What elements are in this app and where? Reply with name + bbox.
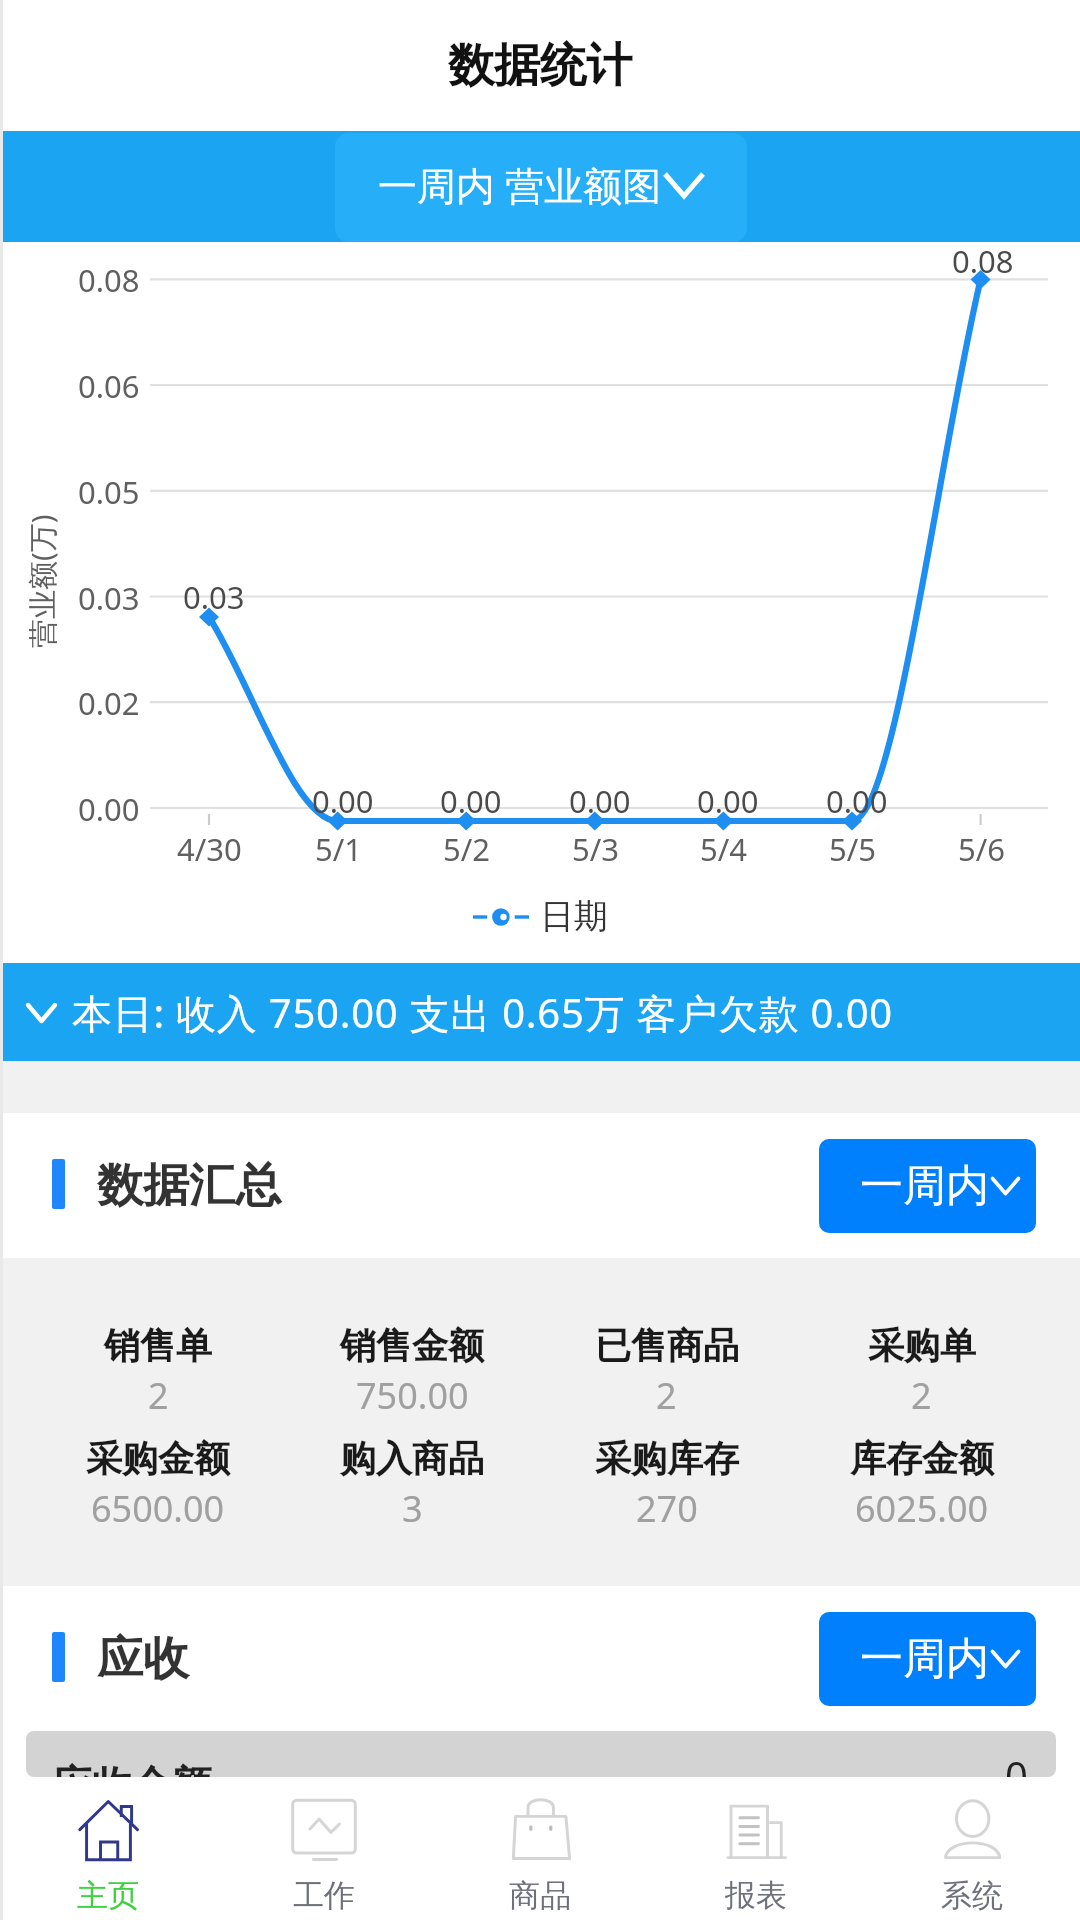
staticText: 5/4 [700,828,747,870]
button[interactable]: 一周内 [819,1139,1036,1233]
staticText: 0.08 [78,259,140,301]
staticText: 6025.00 [855,1484,989,1533]
staticText: 750.00 [356,1371,469,1420]
staticText: 日期 [540,895,608,938]
staticText: 一周内 营业额图 [378,158,662,211]
staticText: 0.00 [440,780,502,822]
staticText: 0.05 [78,471,140,513]
staticText: 270 [636,1484,698,1533]
staticText: 5/1 [315,828,362,870]
button[interactable]: 一周内 营业额图 [335,133,747,242]
button[interactable]: Reports [648,1777,864,1920]
button[interactable]: Work [216,1777,432,1920]
staticText: 3 [402,1484,423,1533]
staticText: 5/6 [958,828,1005,870]
staticText: 库存金额 [850,1436,994,1481]
button[interactable]: 一周内 [819,1612,1036,1706]
staticText: 5/3 [572,828,619,870]
button[interactable]: 本日: 收入 750.00 支出 0.65万 客户欠款 0.00 [0,963,1080,1061]
staticText: 采购金额 [86,1436,230,1481]
staticText: 0 [1005,1748,1028,1777]
staticText: 本日: 收入 750.00 支出 0.65万 客户欠款 0.00 [72,985,893,1040]
staticText: 一周内 [860,1632,989,1686]
staticText: 采购单 [868,1323,976,1368]
button[interactable]: 应收金额 [26,1731,1056,1777]
staticText: 购入商品 [340,1436,484,1481]
staticText: 0.02 [78,682,140,724]
staticText: 数据统计 [448,37,632,95]
staticText: 应收金额 [52,1760,212,1777]
staticText: 0.00 [312,780,374,822]
staticText: 0.00 [826,780,888,822]
button[interactable]: System [864,1777,1080,1920]
staticText: 2 [911,1371,932,1420]
staticText: 0.00 [78,788,140,830]
staticText: 销售金额 [340,1323,484,1368]
staticText: 0.06 [78,365,140,407]
staticText: 0.08 [952,240,1014,282]
staticText: 5/5 [829,828,876,870]
staticText: 5/2 [443,828,490,870]
staticText: 应收 [97,1630,189,1688]
staticText: 报表 [725,1876,787,1915]
staticText: 采购库存 [595,1436,739,1481]
button[interactable]: Goods [432,1777,648,1920]
staticText: 0.03 [183,576,245,618]
staticText: 工作 [293,1876,355,1915]
staticText: 0.00 [569,780,631,822]
staticText: 0.03 [78,577,140,619]
staticText: 2 [148,1371,169,1420]
staticText: 4/30 [177,828,242,870]
button[interactable]: Home [0,1777,216,1920]
staticText: 2 [656,1371,677,1420]
staticText: 6500.00 [91,1484,225,1533]
staticText: 数据汇总 [97,1157,281,1215]
staticText: 营业额(万) [22,514,62,648]
staticText: 一周内 [860,1159,989,1213]
staticText: 系统 [941,1876,1003,1915]
staticText: 销售单 [104,1323,212,1368]
staticText: 0.00 [697,780,759,822]
staticText: 主页 [77,1876,139,1915]
staticText: 商品 [509,1876,571,1915]
staticText: 已售商品 [595,1323,739,1368]
